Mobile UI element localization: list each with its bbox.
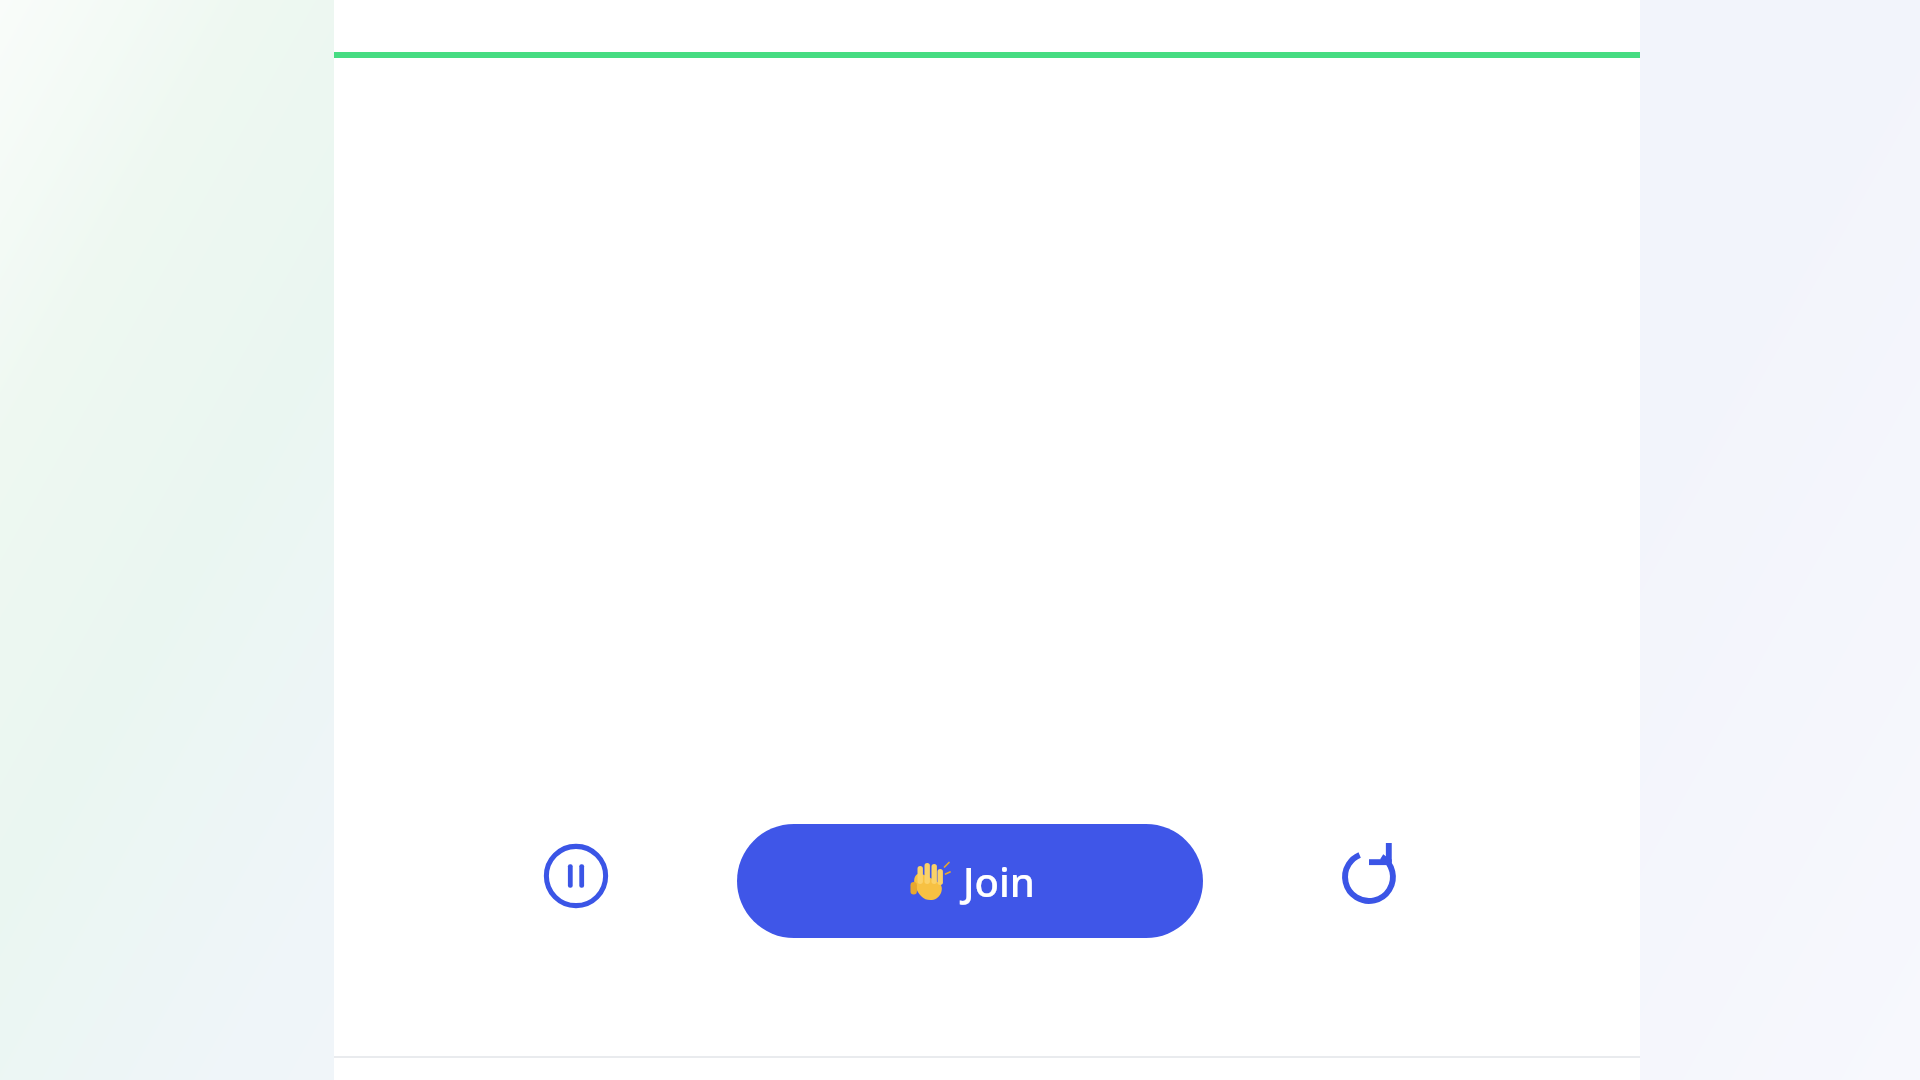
button[interactable]: Refresh xyxy=(1327,835,1411,919)
staticText: Join xyxy=(963,854,1035,908)
button[interactable]: Join xyxy=(737,824,1203,938)
button[interactable]: Pause xyxy=(530,830,622,922)
